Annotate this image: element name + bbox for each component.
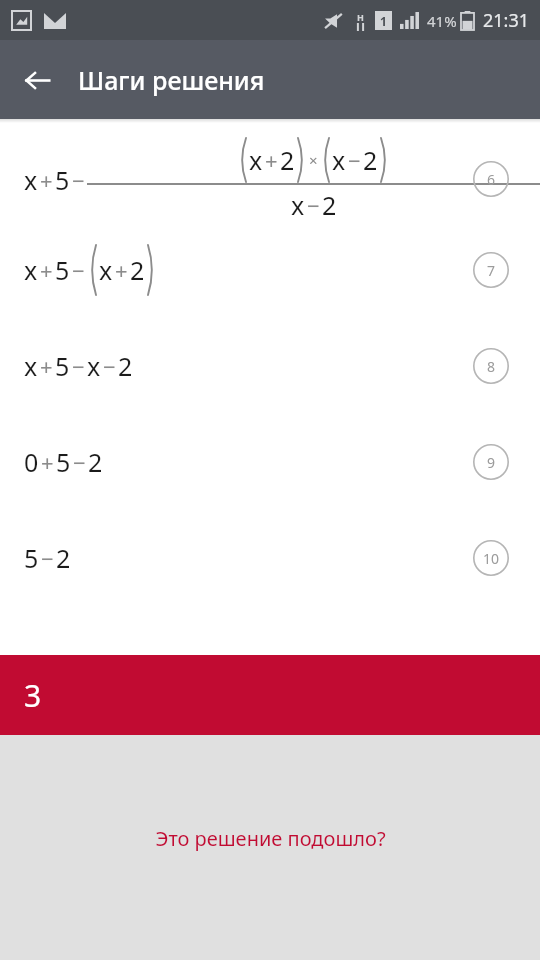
staticText: x — [87, 349, 101, 383]
button[interactable]: 3 — [0, 655, 540, 735]
staticText: 5 — [24, 541, 39, 575]
staticText: 5 — [55, 349, 70, 383]
staticText: x — [24, 253, 38, 287]
staticText: x — [24, 163, 38, 197]
staticText: 5 — [55, 163, 70, 197]
staticText: x — [291, 188, 305, 222]
staticText: 21:31 — [483, 8, 530, 33]
staticText: 41% — [427, 11, 457, 31]
staticText: − — [41, 543, 54, 573]
staticText: − — [73, 447, 86, 477]
staticText: 1 — [380, 13, 387, 29]
staticText: 0 — [24, 445, 39, 479]
staticText: + — [265, 145, 278, 175]
staticText: + — [115, 255, 128, 285]
button[interactable]: x — [0, 136, 540, 222]
staticText: 2 — [56, 541, 71, 575]
staticText: 2 — [363, 143, 378, 177]
staticText: x — [332, 143, 346, 177]
staticText: − — [103, 351, 116, 381]
button[interactable]: x — [0, 318, 540, 414]
staticText: × — [309, 150, 318, 170]
staticText: 2 — [280, 143, 295, 177]
button[interactable]: x — [0, 222, 540, 318]
staticText: Шаги решения — [78, 63, 265, 97]
staticText: 2 — [322, 188, 337, 222]
staticText: 5 — [55, 253, 70, 287]
button[interactable]: Back — [14, 57, 60, 103]
staticText: + — [40, 165, 53, 195]
button[interactable]: 0 — [0, 414, 540, 510]
staticText: 2 — [130, 253, 145, 287]
staticText: 2 — [88, 445, 103, 479]
staticText: 5 — [56, 445, 71, 479]
staticText: − — [72, 255, 85, 285]
staticText: x — [249, 143, 263, 177]
staticText: 6 — [487, 170, 496, 189]
staticText: − — [72, 165, 85, 195]
staticText: + — [41, 447, 54, 477]
staticText: 7 — [487, 261, 496, 280]
staticText: 3 — [24, 675, 42, 716]
button[interactable]: 5 — [0, 510, 540, 606]
staticText: x — [99, 253, 113, 287]
staticText: 10 — [483, 549, 500, 568]
staticText: 2 — [118, 349, 133, 383]
staticText: 8 — [487, 357, 496, 376]
staticText: 9 — [487, 453, 496, 472]
staticText: H — [357, 11, 364, 23]
staticText: x — [24, 349, 38, 383]
staticText: − — [72, 351, 85, 381]
staticText: + — [40, 351, 53, 381]
button[interactable]: Это решение подошло? — [155, 825, 386, 852]
staticText: − — [348, 145, 361, 175]
staticText: + — [40, 255, 53, 285]
staticText: − — [307, 190, 320, 220]
